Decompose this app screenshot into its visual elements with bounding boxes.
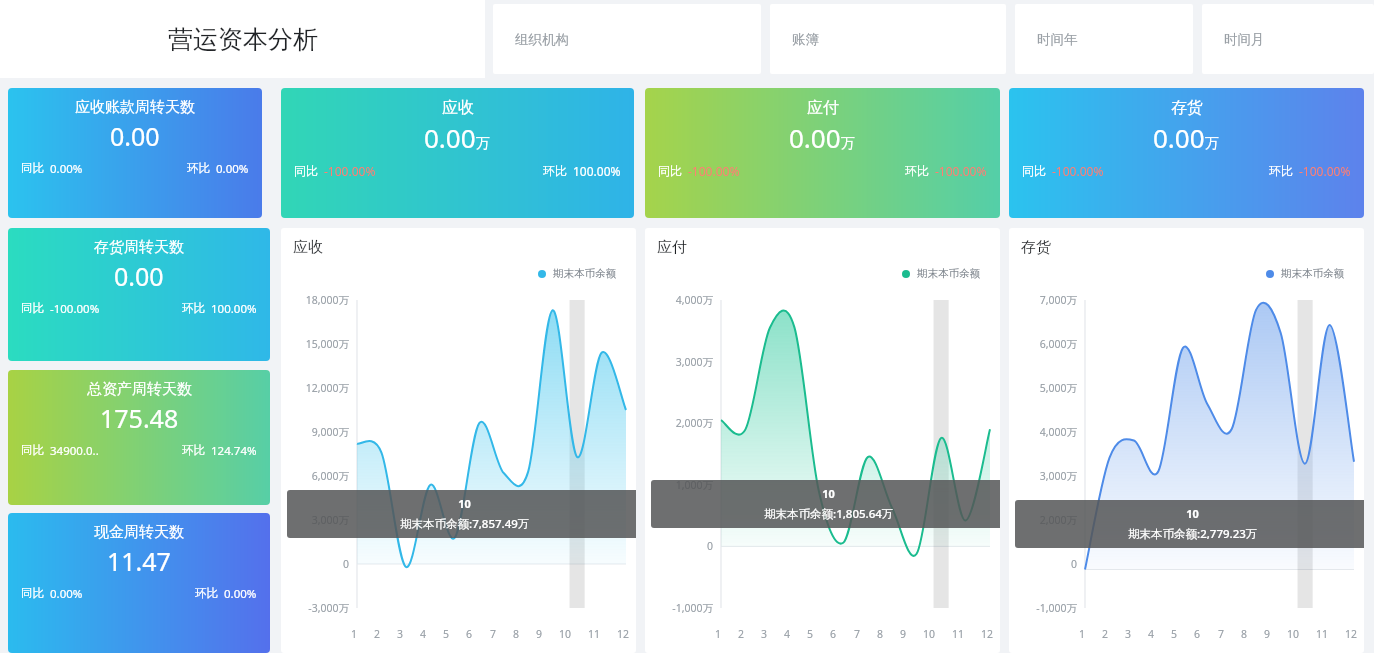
staticText: 同比 bbox=[658, 163, 682, 178]
staticText: 11 bbox=[588, 627, 601, 641]
staticText: 4 bbox=[784, 627, 791, 641]
staticText: 9,000万 bbox=[281, 425, 349, 439]
staticText: 7,000万 bbox=[1009, 293, 1077, 307]
staticText: 8 bbox=[877, 627, 884, 641]
button[interactable]: 时间月 bbox=[1202, 4, 1374, 74]
staticText: 应付 bbox=[657, 238, 687, 257]
staticText: 1 bbox=[351, 627, 358, 641]
staticText: 1 bbox=[1079, 627, 1086, 641]
staticText: 时间年 bbox=[1037, 31, 1078, 48]
staticText: 12 bbox=[981, 627, 994, 641]
button[interactable]: 应收账款周转天数 bbox=[8, 88, 262, 218]
staticText: -3,000万 bbox=[281, 601, 349, 615]
staticText: 环比 bbox=[1269, 163, 1293, 178]
staticText: 2,000万 bbox=[1009, 513, 1077, 527]
staticText: 期末本币余额:1,805.64万 bbox=[764, 506, 894, 522]
button[interactable]: 应收 bbox=[281, 88, 634, 218]
staticText: 9 bbox=[1264, 627, 1271, 641]
staticText: 0.00% bbox=[216, 161, 249, 177]
staticText: 7 bbox=[854, 627, 861, 641]
staticText: 3 bbox=[397, 627, 404, 641]
staticText: 1,000万 bbox=[645, 478, 713, 492]
staticText: 万 bbox=[1205, 134, 1220, 152]
staticText: 存货 bbox=[1021, 238, 1051, 257]
staticText: 0.00% bbox=[50, 586, 83, 602]
staticText: 应收 bbox=[442, 98, 474, 118]
staticText: 34900.0.. bbox=[50, 443, 99, 459]
button[interactable]: 组织机构 bbox=[493, 4, 761, 74]
staticText: 8 bbox=[513, 627, 520, 641]
staticText: 组织机构 bbox=[515, 31, 569, 48]
staticText: 124.74% bbox=[211, 443, 257, 459]
staticText: 环比 bbox=[182, 301, 205, 315]
staticText: 3,000万 bbox=[645, 355, 713, 369]
staticText: 12 bbox=[617, 627, 630, 641]
staticText: -100.00% bbox=[1299, 163, 1351, 179]
staticText: 0 bbox=[1009, 557, 1077, 571]
staticText: 10 bbox=[662, 486, 995, 501]
staticText: 9 bbox=[900, 627, 907, 641]
button[interactable]: 应收 bbox=[281, 228, 636, 653]
staticText: 12,000万 bbox=[281, 381, 349, 395]
staticText: 11 bbox=[1316, 627, 1329, 641]
staticText: 2,000万 bbox=[645, 416, 713, 430]
staticText: 0.00 bbox=[789, 120, 841, 155]
staticText: 4,000万 bbox=[1009, 425, 1077, 439]
staticText: 期末本币余额 bbox=[1281, 267, 1344, 280]
button[interactable]: 存货周转天数 bbox=[8, 228, 270, 361]
staticText: 环比 bbox=[543, 163, 567, 178]
staticText: 1 bbox=[715, 627, 722, 641]
staticText: 万 bbox=[476, 134, 491, 152]
staticText: 10 bbox=[1287, 627, 1300, 641]
staticText: 12 bbox=[1345, 627, 1358, 641]
staticText: 时间月 bbox=[1224, 31, 1265, 48]
staticText: 100.00% bbox=[211, 301, 257, 317]
staticText: 11 bbox=[952, 627, 965, 641]
staticText: 0.00 bbox=[424, 120, 476, 155]
staticText: 现金周转天数 bbox=[94, 523, 184, 542]
staticText: 环比 bbox=[182, 443, 205, 457]
staticText: 环比 bbox=[187, 161, 210, 175]
button[interactable]: 存货 bbox=[1009, 228, 1364, 653]
button[interactable]: 账簿 bbox=[770, 4, 1006, 74]
staticText: 同比 bbox=[21, 586, 44, 600]
staticText: 2 bbox=[738, 627, 745, 641]
staticText: 8 bbox=[1241, 627, 1248, 641]
staticText: 总资产周转天数 bbox=[87, 380, 192, 399]
staticText: 应付 bbox=[807, 98, 839, 118]
staticText: 5,000万 bbox=[1009, 381, 1077, 395]
button[interactable]: 应付 bbox=[645, 88, 1000, 218]
staticText: 3,000万 bbox=[1009, 469, 1077, 483]
staticText: 4,000万 bbox=[645, 293, 713, 307]
staticText: 3 bbox=[1125, 627, 1132, 641]
staticText: 6 bbox=[1194, 627, 1201, 641]
staticText: 应收 bbox=[293, 238, 323, 257]
staticText: 同比 bbox=[21, 161, 44, 175]
staticText: 10 bbox=[298, 496, 631, 511]
button[interactable]: 应付 bbox=[645, 228, 1000, 653]
staticText: 期末本币余额:2,779.23万 bbox=[1128, 526, 1258, 542]
staticText: 0 bbox=[281, 557, 349, 571]
staticText: 4 bbox=[1148, 627, 1155, 641]
staticText: 6 bbox=[830, 627, 837, 641]
staticText: 同比 bbox=[21, 301, 44, 315]
staticText: 期末本币余额:7,857.49万 bbox=[400, 516, 530, 532]
staticText: 7 bbox=[1218, 627, 1225, 641]
staticText: -100.00% bbox=[935, 163, 987, 179]
button[interactable]: 总资产周转天数 bbox=[8, 370, 270, 505]
staticText: 万 bbox=[841, 134, 856, 152]
staticText: 应收账款周转天数 bbox=[75, 98, 195, 117]
staticText: 同比 bbox=[1022, 163, 1046, 178]
staticText: 0.00 bbox=[110, 119, 160, 153]
button[interactable]: 营运资本分析 bbox=[0, 0, 485, 78]
button[interactable]: 存货 bbox=[1009, 88, 1364, 218]
button[interactable]: 时间年 bbox=[1015, 4, 1193, 74]
staticText: 5 bbox=[443, 627, 450, 641]
staticText: 期末本币余额 bbox=[553, 267, 616, 280]
staticText: -100.00% bbox=[50, 301, 100, 317]
button[interactable]: 现金周转天数 bbox=[8, 513, 270, 653]
staticText: 10 bbox=[1026, 506, 1359, 521]
staticText: 175.48 bbox=[100, 401, 179, 435]
staticText: 6,000万 bbox=[1009, 337, 1077, 351]
staticText: -1,000万 bbox=[1009, 601, 1077, 615]
